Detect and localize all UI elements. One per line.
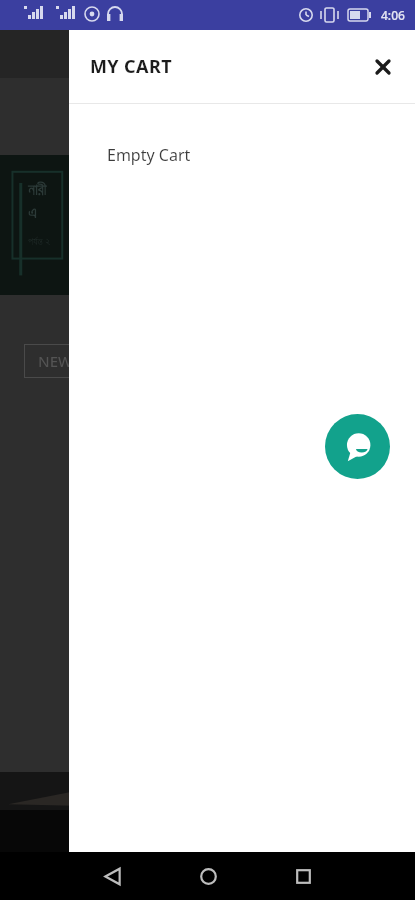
button[interactable]: Home xyxy=(186,854,230,898)
button[interactable]: NEW xyxy=(24,344,144,378)
staticText: পর্যন্ত ২ xyxy=(28,234,51,248)
staticText: এ xyxy=(28,202,41,222)
staticText: Empty Cart xyxy=(107,144,191,166)
button[interactable]: Back xyxy=(90,854,134,898)
staticText: নারী xyxy=(28,183,47,198)
button[interactable]: Close cart xyxy=(361,45,405,89)
button[interactable]: Recent apps xyxy=(281,854,325,898)
button[interactable]: Open chat xyxy=(325,414,390,479)
staticText: NEW xyxy=(38,351,73,371)
staticText: MY CART xyxy=(90,54,172,79)
staticText: 4:06 xyxy=(381,7,405,23)
